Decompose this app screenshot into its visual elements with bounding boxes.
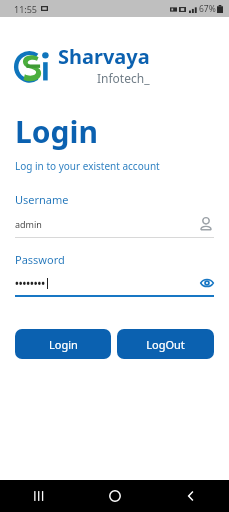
- staticText: Username: [15, 192, 69, 207]
- button[interactable]: Back: [153, 480, 229, 512]
- button[interactable]: LogOut: [117, 329, 214, 359]
- staticText: ••••••••: [15, 276, 46, 290]
- staticText: Password: [15, 252, 65, 267]
- staticText: 11:55: [14, 3, 38, 15]
- staticText: Sharvaya: [58, 43, 150, 70]
- button[interactable]: Recent apps: [0, 480, 77, 512]
- button[interactable]: Show password: [200, 276, 214, 290]
- button[interactable]: Login: [15, 329, 111, 359]
- button[interactable]: Home: [77, 480, 153, 512]
- staticText: Login: [49, 337, 78, 352]
- staticText: 67%: [199, 3, 216, 15]
- other: Username: [198, 216, 214, 232]
- button[interactable]: admin: [15, 216, 214, 232]
- staticText: Login: [15, 111, 98, 152]
- staticText: Infotech_: [97, 70, 150, 86]
- button[interactable]: ••••••••: [15, 276, 214, 290]
- staticText: admin: [15, 218, 198, 230]
- staticText: Log in to your existent account: [15, 159, 160, 173]
- staticText: LogOut: [146, 337, 185, 352]
